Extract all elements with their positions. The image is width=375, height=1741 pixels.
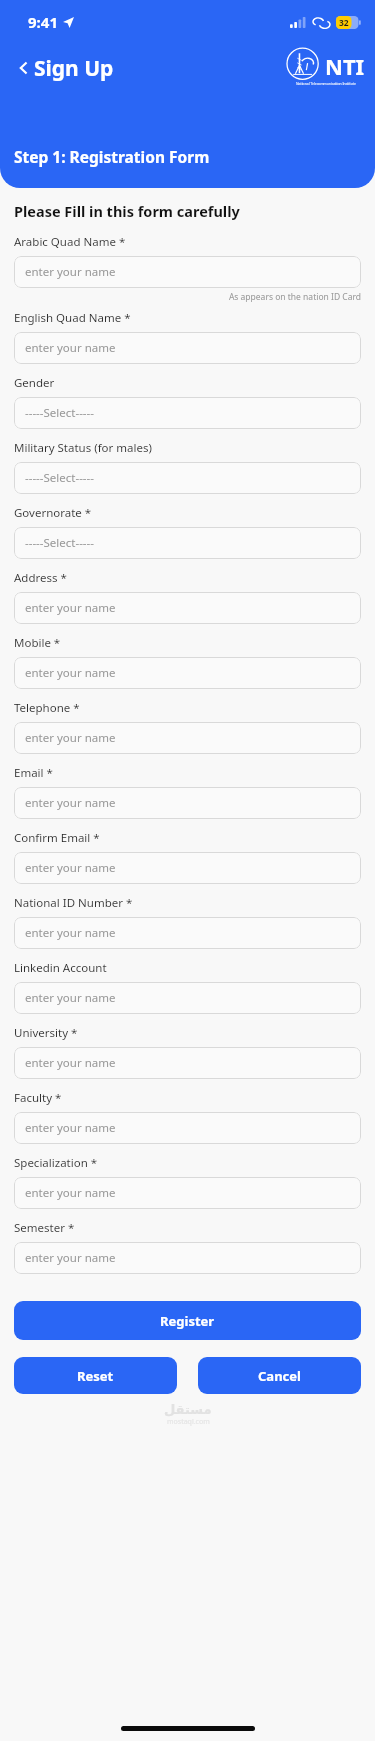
- staticText: Governorate *: [14, 505, 92, 521]
- staticText: Step 1: Registration Form: [14, 146, 210, 167]
- staticText: Telephone *: [14, 700, 80, 716]
- staticText: Military Status (for males): [14, 440, 152, 456]
- staticText: Mobile *: [14, 635, 61, 651]
- staticText: enter your name: [25, 340, 116, 356]
- staticText: NTI: [325, 51, 365, 81]
- staticText: 9:41: [28, 12, 58, 32]
- staticText: Semester *: [14, 1220, 75, 1236]
- button[interactable]: enter your name: [14, 1177, 361, 1209]
- staticText: enter your name: [25, 600, 116, 616]
- button[interactable]: enter your name: [14, 256, 361, 288]
- staticText: Arabic Quad Name *: [14, 234, 126, 250]
- staticText: Address *: [14, 570, 67, 586]
- staticText: enter your name: [25, 1250, 116, 1266]
- staticText: Faculty *: [14, 1090, 62, 1106]
- staticText: enter your name: [25, 264, 116, 280]
- staticText: enter your name: [25, 665, 116, 681]
- staticText: Sign Up: [34, 54, 114, 83]
- staticText: As appears on the nation ID Card: [14, 291, 361, 303]
- staticText: مستقل: [164, 1402, 212, 1417]
- button[interactable]: Cancel: [198, 1357, 361, 1394]
- staticText: Please Fill in this form carefully: [14, 201, 240, 221]
- staticText: Confirm Email *: [14, 830, 100, 846]
- button[interactable]: enter your name: [14, 1242, 361, 1274]
- staticText: Reset: [77, 1367, 114, 1385]
- staticText: enter your name: [25, 925, 116, 941]
- staticText: enter your name: [25, 860, 116, 876]
- staticText: enter your name: [25, 1120, 116, 1136]
- staticText: National ID Number *: [14, 895, 133, 911]
- button[interactable]: enter your name: [14, 1112, 361, 1144]
- staticText: enter your name: [25, 1055, 116, 1071]
- staticText: 32: [339, 17, 349, 29]
- staticText: English Quad Name *: [14, 310, 131, 326]
- button[interactable]: Reset: [14, 1357, 177, 1394]
- button[interactable]: -----Select-----: [14, 462, 361, 494]
- staticText: enter your name: [25, 1185, 116, 1201]
- button[interactable]: enter your name: [14, 787, 361, 819]
- staticText: -----Select-----: [25, 470, 94, 486]
- staticText: Email *: [14, 765, 53, 781]
- button[interactable]: -----Select-----: [14, 527, 361, 559]
- button[interactable]: -----Select-----: [14, 397, 361, 429]
- staticText: Gender: [14, 375, 55, 391]
- button[interactable]: enter your name: [14, 852, 361, 884]
- button[interactable]: Back: [8, 52, 40, 84]
- button[interactable]: enter your name: [14, 722, 361, 754]
- staticText: Specialization *: [14, 1155, 98, 1171]
- staticText: National Telecommunication Institute: [296, 81, 356, 86]
- staticText: enter your name: [25, 990, 116, 1006]
- button[interactable]: enter your name: [14, 917, 361, 949]
- staticText: -----Select-----: [25, 535, 94, 551]
- staticText: Cancel: [258, 1367, 301, 1385]
- button[interactable]: enter your name: [14, 332, 361, 364]
- button[interactable]: enter your name: [14, 592, 361, 624]
- staticText: Register: [160, 1312, 215, 1330]
- staticText: enter your name: [25, 795, 116, 811]
- button[interactable]: enter your name: [14, 657, 361, 689]
- button[interactable]: enter your name: [14, 1047, 361, 1079]
- staticText: mostaql.com: [167, 1417, 210, 1427]
- staticText: -----Select-----: [25, 405, 94, 421]
- button[interactable]: enter your name: [14, 982, 361, 1014]
- staticText: enter your name: [25, 730, 116, 746]
- button[interactable]: Register: [14, 1301, 361, 1340]
- staticText: Linkedin Account: [14, 960, 107, 976]
- staticText: University *: [14, 1025, 78, 1041]
